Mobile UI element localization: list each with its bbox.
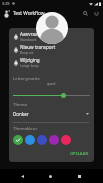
button[interactable]: Nieuw transport <box>9 43 94 56</box>
button[interactable]: Home <box>45 171 56 182</box>
button[interactable]: Account <box>2 8 12 18</box>
button[interactable]: Back <box>17 171 28 182</box>
staticText: Lettergrootte <box>13 75 40 81</box>
button[interactable]: Theme colour <box>13 135 23 145</box>
staticText: goed <box>47 81 56 86</box>
button[interactable]: Recents <box>74 171 85 182</box>
button[interactable]: Refresh <box>91 8 102 19</box>
staticText: Aanvraag <box>20 31 41 37</box>
button[interactable]: Aanvraag <box>9 30 94 43</box>
button[interactable]: Donker <box>9 108 94 119</box>
staticText: Beep ert <box>20 50 34 55</box>
staticText: Test Workflow <box>13 10 45 17</box>
staticText: Nieuw transport <box>20 44 56 50</box>
button[interactable]: Theme colour <box>25 135 35 145</box>
staticText: Wijziging <box>20 57 40 63</box>
staticText: 3:29 <box>2 1 10 6</box>
button[interactable]: Theme colour <box>61 135 71 145</box>
staticText: Lange beep <box>20 63 39 68</box>
staticText: Standaard <box>20 37 37 42</box>
button[interactable]: Search <box>80 8 91 19</box>
button[interactable]: Wijziging <box>9 56 94 69</box>
button[interactable]: Theme colour <box>37 135 47 145</box>
staticText: OPSLAAN <box>70 151 89 156</box>
button[interactable]: Theme colour <box>49 135 59 145</box>
button[interactable]: OPSLAAN <box>65 149 94 158</box>
staticText: Themakleur <box>13 125 38 131</box>
staticText: Thema <box>13 101 27 107</box>
staticText: Donker <box>13 111 29 117</box>
button[interactable]: Font size slider <box>61 93 66 98</box>
button[interactable]: Profile photo <box>36 12 68 44</box>
